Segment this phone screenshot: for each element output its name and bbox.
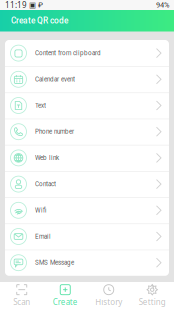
staticText: Text [35, 102, 46, 109]
staticText: SMS Message [35, 259, 74, 266]
button[interactable]: SMS Message [5, 250, 169, 276]
button[interactable]: Calendar event [5, 66, 169, 92]
staticText: Create QR code [11, 16, 68, 26]
button[interactable]: Wifi [5, 197, 169, 223]
staticText: Calendar event [35, 76, 75, 83]
button[interactable]: Email [5, 223, 169, 250]
button[interactable]: Phone number [5, 119, 169, 145]
button[interactable]: Web link [5, 145, 169, 171]
staticText: Web link [35, 154, 59, 161]
staticText: Email [35, 233, 51, 240]
button[interactable]: Setting [130, 282, 174, 310]
staticText: Setting [139, 297, 166, 307]
staticText: ▣ [29, 1, 36, 9]
staticText: 11:19 [5, 0, 27, 10]
button[interactable]: Text [5, 92, 169, 119]
staticText: Contact [35, 180, 56, 188]
staticText: 94% [156, 1, 169, 9]
staticText: ₽ [38, 1, 43, 9]
staticText: History [95, 297, 122, 307]
button[interactable]: Scan [0, 282, 43, 310]
button[interactable]: Content from clipboard [5, 40, 169, 66]
button[interactable]: Contact [5, 171, 169, 197]
staticText: Wifi [35, 207, 46, 214]
staticText: Phone number [35, 128, 74, 135]
button[interactable]: Create [43, 282, 87, 310]
staticText: Scan [13, 297, 30, 307]
staticText: Content from clipboard [35, 49, 101, 57]
staticText: Create [53, 297, 78, 307]
button[interactable]: History [87, 282, 130, 310]
